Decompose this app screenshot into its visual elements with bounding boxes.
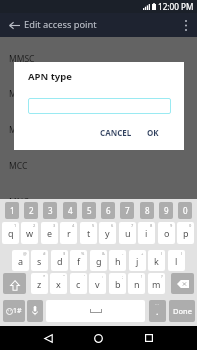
button[interactable]: 0	[177, 222, 194, 244]
staticText: 4	[68, 205, 73, 216]
button[interactable]: Shift	[3, 273, 26, 294]
staticText: v	[95, 278, 100, 290]
staticText: w	[26, 227, 34, 239]
staticText: +	[141, 251, 144, 256]
staticText: c	[76, 278, 81, 290]
button[interactable]: Backspace	[171, 273, 194, 294]
staticText: 1	[10, 205, 15, 216]
button[interactable]: MMS proxy	[0, 88, 197, 122]
staticText: $	[63, 251, 66, 256]
button[interactable]: )	[168, 250, 185, 271]
button[interactable]: APN type input	[28, 98, 171, 114]
button[interactable]: Home	[86, 326, 110, 350]
button[interactable]: 9	[159, 202, 173, 219]
staticText: 5	[92, 223, 95, 228]
button[interactable]: 4	[60, 222, 77, 244]
staticText: 9	[164, 205, 169, 216]
button[interactable]: 1	[2, 222, 19, 244]
staticText: Edit access point	[24, 18, 97, 31]
button[interactable]: MMS port	[0, 124, 197, 158]
button[interactable]: 8	[138, 222, 155, 244]
button[interactable]: ?	[148, 273, 165, 294]
button[interactable]: OK	[144, 123, 162, 141]
button[interactable]: More options	[175, 13, 197, 37]
button[interactable]: %	[70, 250, 87, 271]
button[interactable]: 6	[99, 222, 116, 244]
staticText: 2	[33, 223, 36, 228]
staticText: #	[43, 251, 46, 256]
staticText: APN type	[28, 70, 72, 83]
button[interactable]: '	[70, 273, 87, 294]
staticText: j	[136, 255, 139, 267]
button[interactable]: 0	[178, 202, 192, 219]
staticText: q	[8, 227, 14, 239]
button[interactable]: :	[89, 273, 106, 294]
staticText: o	[164, 227, 170, 239]
staticText: i	[145, 227, 148, 239]
button[interactable]: 7	[119, 222, 136, 244]
button[interactable]: Symbols	[3, 300, 25, 322]
staticText: 4	[72, 223, 75, 228]
button[interactable]: 2	[21, 222, 38, 244]
button[interactable]: Space	[46, 300, 145, 322]
button[interactable]: @	[12, 250, 29, 271]
button[interactable]: Done	[169, 300, 195, 322]
staticText: u	[125, 227, 131, 239]
staticText: Done	[173, 306, 192, 316]
button[interactable]: MCC	[0, 160, 197, 194]
staticText: e	[47, 227, 53, 239]
button[interactable]: 5	[80, 222, 97, 244]
button[interactable]: +	[129, 250, 146, 271]
button[interactable]: 7	[120, 202, 134, 219]
button[interactable]: 4	[63, 202, 77, 219]
button[interactable]: Back	[36, 326, 60, 350]
staticText: k	[154, 255, 159, 267]
staticText: a	[18, 255, 24, 267]
button[interactable]: Recent apps	[137, 326, 161, 350]
staticText: CANCEL	[100, 127, 132, 138]
button[interactable]: &	[90, 250, 107, 271]
button[interactable]: #	[31, 250, 48, 271]
button[interactable]: Navigate up	[0, 13, 28, 37]
button[interactable]: ;	[109, 273, 126, 294]
staticText: '	[84, 274, 85, 279]
staticText: !	[141, 274, 143, 279]
staticText: s	[37, 255, 42, 267]
button[interactable]: CANCEL	[97, 123, 135, 141]
staticText: 1#	[13, 306, 22, 316]
button[interactable]: 5	[82, 202, 96, 219]
button[interactable]: 1	[5, 202, 19, 219]
staticText: OK	[147, 127, 159, 138]
button[interactable]: -	[109, 250, 126, 271]
button[interactable]: MMSC	[0, 53, 197, 87]
staticText: .	[156, 305, 159, 317]
staticText: 2	[29, 205, 34, 216]
staticText: MCC	[9, 160, 28, 172]
staticText: g	[96, 255, 102, 267]
staticText: )	[181, 251, 183, 256]
staticText: *	[43, 274, 46, 279]
button[interactable]: *	[31, 273, 48, 294]
staticText: :	[102, 274, 104, 279]
button[interactable]: 9	[158, 222, 175, 244]
button[interactable]: 8	[140, 202, 154, 219]
staticText: z	[37, 278, 42, 290]
button[interactable]: MNC	[0, 196, 197, 230]
button[interactable]: "	[50, 273, 67, 294]
button[interactable]: 2	[24, 202, 38, 219]
button[interactable]: ...	[149, 300, 166, 322]
button[interactable]: 3	[41, 222, 58, 244]
button[interactable]: Voice input	[27, 300, 43, 322]
staticText: y	[105, 227, 110, 239]
button[interactable]: (	[148, 250, 165, 271]
staticText: ?	[161, 274, 163, 279]
button[interactable]: !	[128, 273, 145, 294]
staticText: ...	[155, 300, 160, 307]
staticText: &	[102, 251, 105, 256]
button[interactable]: 6	[101, 202, 115, 219]
staticText: 6	[106, 205, 111, 216]
button[interactable]: 3	[43, 202, 57, 219]
staticText: t	[87, 227, 91, 239]
staticText: %	[81, 251, 85, 256]
button[interactable]: $	[51, 250, 68, 271]
